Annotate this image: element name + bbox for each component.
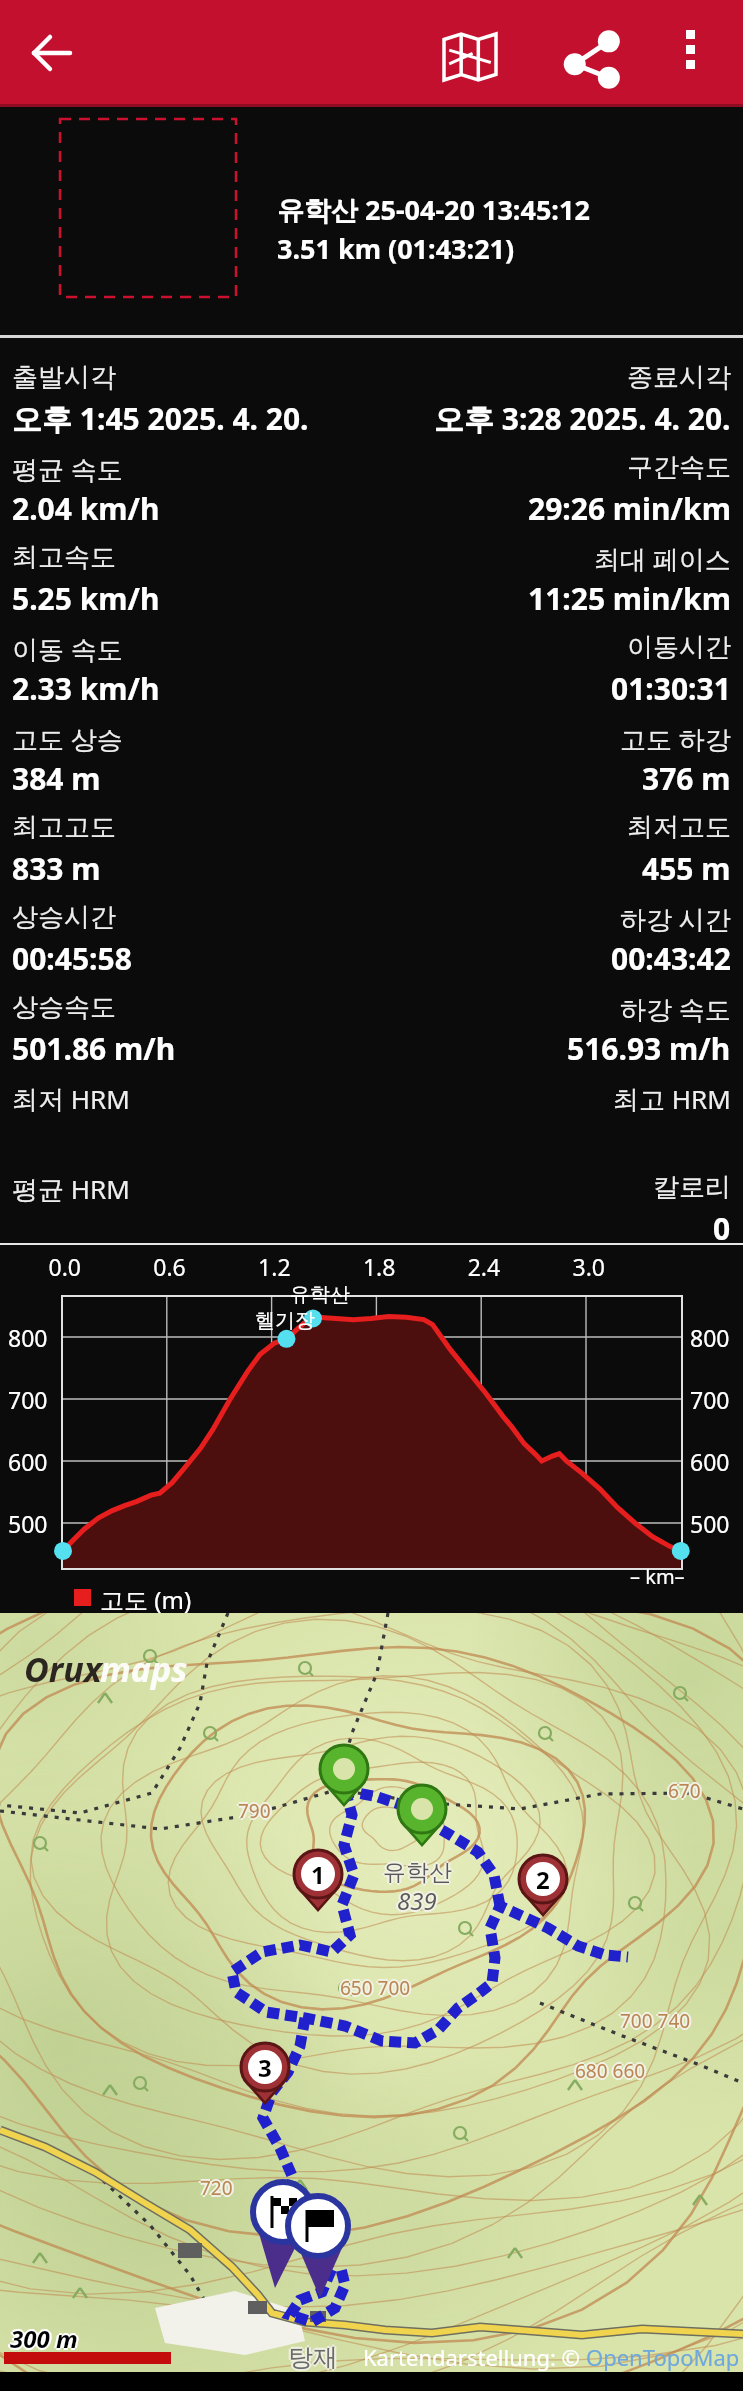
staticText: 고도 하강 — [620, 721, 731, 753]
button[interactable] — [442, 29, 498, 85]
staticText: 최대 페이스 — [594, 541, 731, 573]
staticText: 칼로리 — [653, 1171, 731, 1203]
button[interactable] — [556, 25, 622, 91]
button[interactable] — [24, 25, 80, 81]
staticText: 최저 HRM — [12, 1081, 130, 1113]
staticText: 평균 속도 — [12, 451, 123, 483]
staticText: 종료시각 — [627, 361, 731, 393]
staticText: 평균 HRM — [12, 1171, 130, 1203]
staticText: 하강 시간 — [620, 901, 731, 933]
staticText: 833 m — [12, 848, 101, 888]
staticText: 출발시각 — [12, 361, 116, 393]
staticText: 11:25 min/km — [528, 578, 731, 618]
staticText: 2.04 km/h — [12, 488, 160, 528]
staticText: 이동 속도 — [12, 631, 123, 663]
staticText: 2.33 km/h — [12, 668, 160, 708]
staticText: 501.86 m/h — [12, 1028, 176, 1068]
staticText: 00:43:42 — [611, 938, 731, 978]
staticText: 00:45:58 — [12, 938, 132, 978]
staticText: 0 — [713, 1208, 731, 1248]
staticText: 384 m — [12, 758, 101, 798]
staticText: 최저고도 — [627, 811, 731, 843]
staticText: 3.51 km (01:43:21) — [277, 230, 515, 267]
staticText: 상승시간 — [12, 901, 116, 933]
staticText: 376 m — [642, 758, 731, 798]
button[interactable] — [666, 25, 716, 75]
staticText: 유학산 25-04-20 13:45:12 — [277, 191, 590, 228]
staticText: 이동시간 — [627, 631, 731, 663]
staticText: 고도 상승 — [12, 721, 123, 753]
staticText: 455 m — [642, 848, 731, 888]
staticText: 하강 속도 — [620, 991, 731, 1023]
staticText: 516.93 m/h — [567, 1028, 731, 1068]
staticText: 5.25 km/h — [12, 578, 160, 618]
staticText: 오후 1:45 2025. 4. 20. — [12, 398, 309, 438]
staticText: 상승속도 — [12, 991, 116, 1023]
staticText: 29:26 min/km — [528, 488, 731, 528]
staticText: 구간속도 — [627, 451, 731, 483]
staticText: 01:30:31 — [611, 668, 731, 708]
staticText: 오후 3:28 2025. 4. 20. — [434, 398, 731, 438]
staticText: 최고고도 — [12, 811, 116, 843]
staticText: 최고 HRM — [613, 1081, 731, 1113]
staticText: 최고속도 — [12, 541, 116, 573]
